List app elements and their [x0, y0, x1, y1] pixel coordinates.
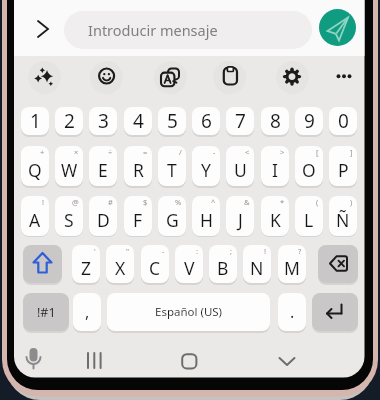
button[interactable]: D — [89, 196, 117, 236]
button[interactable]: F — [124, 196, 152, 236]
staticText: ÷ — [108, 147, 113, 157]
button[interactable]: Y — [192, 146, 220, 186]
staticText: N — [250, 256, 264, 280]
staticText: M — [284, 256, 300, 280]
staticText: $ — [143, 197, 148, 207]
button[interactable]: 4 — [124, 107, 152, 135]
button[interactable]: N — [243, 245, 271, 283]
button[interactable]: J — [226, 196, 254, 236]
button[interactable]: I — [261, 146, 289, 186]
staticText: 7 — [235, 108, 246, 134]
button[interactable]: 6 — [192, 107, 220, 135]
button[interactable] — [319, 9, 356, 46]
button[interactable]: L — [295, 196, 323, 236]
staticText: V — [184, 256, 195, 280]
button[interactable]: C — [141, 245, 169, 283]
button[interactable]: Ñ — [329, 196, 357, 236]
staticText: G — [166, 208, 179, 232]
staticText: 9 — [304, 108, 315, 134]
staticText: O — [302, 158, 316, 182]
button[interactable]: . — [278, 293, 306, 331]
button[interactable]: X — [106, 245, 134, 283]
button[interactable]: T — [158, 146, 186, 186]
staticText: C — [149, 256, 161, 280]
button[interactable] — [90, 61, 123, 94]
button[interactable]: P — [329, 146, 357, 186]
button[interactable]: S — [55, 196, 83, 236]
button[interactable]: 1 — [21, 107, 49, 135]
button[interactable] — [213, 61, 246, 94]
staticText: ( — [316, 197, 319, 207]
staticText: ) — [350, 197, 353, 207]
staticText: Ñ — [336, 208, 350, 232]
button[interactable]: M — [278, 245, 306, 283]
staticText: < — [245, 147, 250, 157]
staticText: X — [115, 256, 126, 280]
button[interactable] — [23, 245, 62, 283]
button[interactable] — [24, 346, 44, 372]
staticText: Introducir mensaje — [88, 20, 218, 40]
staticText: ^ — [211, 197, 216, 207]
button[interactable]: A — [21, 196, 49, 236]
button[interactable]: W — [55, 146, 83, 186]
staticText: 1 — [30, 108, 41, 134]
staticText: A — [29, 208, 41, 232]
button[interactable]: 2 — [55, 107, 83, 135]
staticText: & — [244, 197, 250, 207]
button[interactable] — [82, 348, 107, 372]
button[interactable]: H — [192, 196, 220, 236]
button[interactable]: Introducir mensaje — [64, 11, 312, 49]
button[interactable]: , — [73, 293, 101, 331]
button[interactable] — [154, 61, 187, 94]
button[interactable]: R — [124, 146, 152, 186]
staticText: * — [280, 197, 285, 207]
staticText: 0 — [338, 108, 349, 134]
button[interactable]: U — [226, 146, 254, 186]
button[interactable] — [181, 353, 198, 370]
button[interactable] — [312, 293, 358, 331]
button[interactable] — [277, 354, 297, 368]
staticText: [ — [316, 147, 319, 157]
button[interactable] — [318, 245, 358, 283]
button[interactable]: Español (US) — [107, 293, 270, 331]
button[interactable]: O — [295, 146, 323, 186]
button[interactable] — [36, 21, 50, 37]
button[interactable] — [276, 61, 309, 94]
staticText: ' — [94, 246, 96, 256]
button[interactable]: E — [89, 146, 117, 186]
button[interactable]: 8 — [261, 107, 289, 135]
staticText: 8 — [270, 108, 281, 134]
staticText: " — [126, 246, 130, 256]
staticText: !#1 — [37, 304, 56, 321]
staticText: D — [97, 208, 110, 232]
staticText: / — [179, 147, 182, 157]
button[interactable]: 9 — [295, 107, 323, 135]
button[interactable]: Z — [72, 245, 100, 283]
staticText: ] — [350, 147, 353, 157]
button[interactable]: B — [209, 245, 237, 283]
button[interactable]: K — [261, 196, 289, 236]
staticText: - — [213, 147, 216, 157]
button[interactable]: 5 — [158, 107, 186, 135]
staticText: F — [133, 208, 143, 232]
staticText: 6 — [201, 108, 212, 134]
button[interactable]: !#1 — [23, 293, 69, 331]
staticText: ; — [230, 246, 233, 256]
button[interactable]: 0 — [329, 107, 357, 135]
staticText: × — [74, 147, 79, 157]
staticText: P — [338, 158, 349, 182]
staticText: Q — [28, 158, 42, 182]
button[interactable]: Q — [21, 146, 49, 186]
staticText: K — [270, 208, 281, 232]
button[interactable]: V — [175, 245, 203, 283]
staticText: E — [98, 158, 108, 182]
button[interactable]: 3 — [89, 107, 117, 135]
staticText: % — [175, 197, 182, 207]
button[interactable]: 7 — [226, 107, 254, 135]
staticText: = — [143, 147, 148, 157]
staticText: 2 — [64, 108, 75, 134]
staticText: @ — [72, 197, 79, 207]
staticText: Español (US) — [155, 304, 223, 320]
button[interactable]: G — [158, 196, 186, 236]
button[interactable] — [28, 61, 61, 94]
